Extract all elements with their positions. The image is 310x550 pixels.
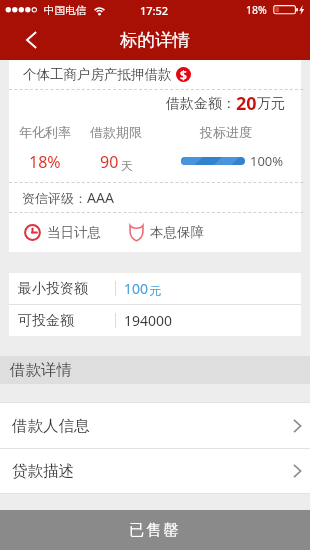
staticText: 资信评级： [22, 190, 87, 206]
staticText: 标的详情 [120, 29, 190, 51]
button[interactable]: 贷款描述 [0, 449, 310, 493]
staticText: 100% [250, 152, 284, 170]
staticText: AAA [87, 188, 114, 207]
staticText: 借款期限 [90, 124, 142, 140]
staticText: 18% [246, 3, 267, 17]
button[interactable]: 借款人信息 [0, 403, 310, 448]
staticText: 17:52 [140, 3, 169, 18]
staticText: 已售罄 [129, 521, 182, 540]
staticText: 年化利率 [19, 124, 71, 140]
staticText: 可投金额 [18, 312, 74, 330]
button[interactable]: Back [0, 20, 62, 60]
staticText: 100 [124, 279, 149, 298]
staticText: 贷款描述 [12, 461, 74, 481]
staticText: 20 [236, 91, 257, 116]
staticText: 最小投资额 [18, 280, 88, 298]
staticText: $ [180, 67, 187, 82]
staticText: 本息保障 [150, 224, 204, 241]
staticText: 元 [149, 283, 161, 298]
button[interactable]: 已售罄 [0, 510, 310, 550]
staticText: 借款人信息 [12, 416, 90, 436]
staticText: 个体工商户房产抵押借款 [23, 66, 172, 83]
staticText: 借款详情 [10, 360, 72, 380]
staticText: 万元 [257, 95, 285, 113]
staticText: 借款金额： [166, 95, 236, 113]
staticText: 天 [121, 158, 133, 173]
staticText: 194000 [124, 311, 173, 330]
staticText: 中国电信 [44, 4, 86, 17]
staticText: 90 [100, 151, 119, 173]
staticText: 当日计息 [47, 224, 101, 241]
staticText: 18% [29, 151, 61, 173]
staticText: 投标进度 [200, 124, 252, 140]
